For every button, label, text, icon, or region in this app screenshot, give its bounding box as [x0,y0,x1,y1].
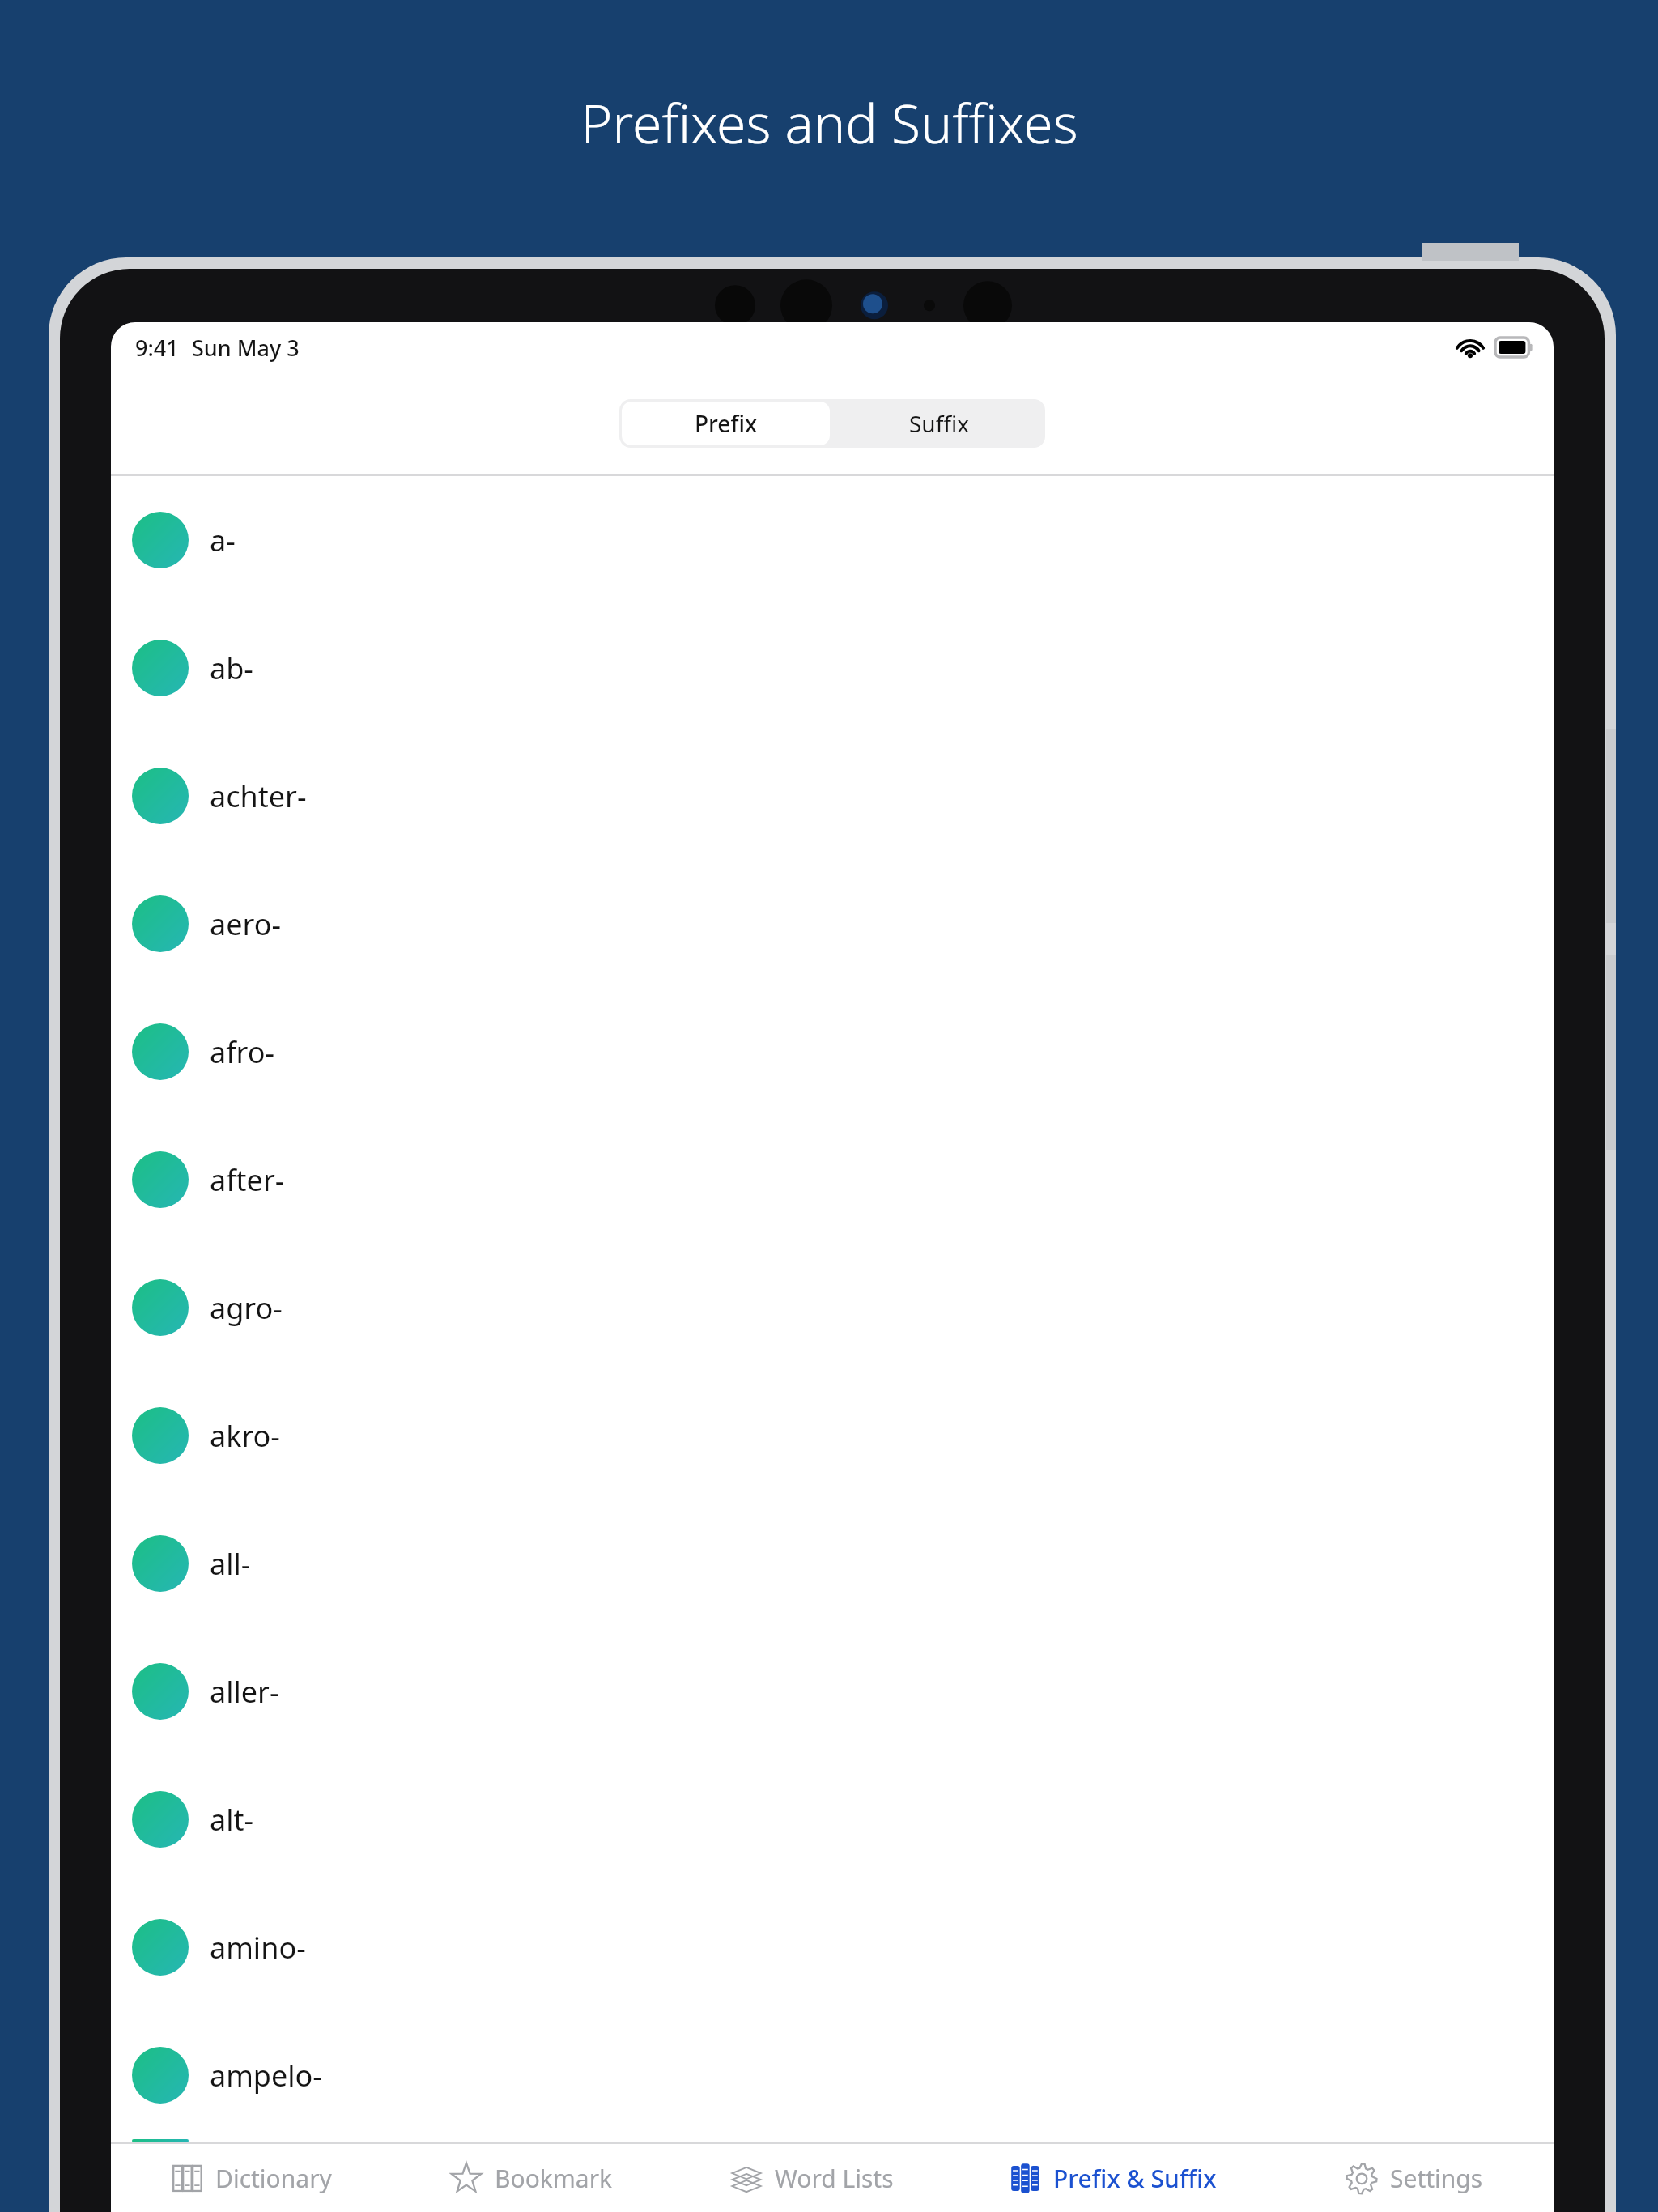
button[interactable]: aller- [111,1627,1554,1755]
staticText: Prefix & Suffix [1053,2162,1217,2195]
staticText: Prefixes and Suffixes [580,86,1078,159]
staticText: aller- [210,1672,279,1712]
staticText: achter- [210,776,307,816]
button[interactable]: amphi- [111,2139,1554,2142]
staticText: Prefix [695,408,758,439]
button[interactable]: agro- [111,1244,1554,1372]
staticText: after- [210,1160,285,1200]
staticText: ab- [210,649,253,688]
button[interactable]: after- [111,1116,1554,1244]
staticText: amino- [210,1928,306,1967]
staticText: all- [210,1544,251,1584]
staticText: ampelo- [210,2056,322,2095]
button[interactable]: ab- [111,604,1554,732]
button[interactable]: aero- [111,860,1554,988]
staticText: a- [210,521,236,560]
staticText: akro- [210,1416,280,1456]
button[interactable]: achter- [111,732,1554,860]
staticText: Dictionary [215,2162,332,2195]
staticText: afro- [210,1032,275,1072]
button[interactable]: alt- [111,1755,1554,1883]
staticText: Word Lists [775,2162,894,2195]
button[interactable]: Bookmark [391,2144,671,2212]
button[interactable]: Suffix [832,399,1045,448]
staticText: Suffix [909,408,969,439]
button[interactable]: a- [111,476,1554,604]
button[interactable]: ampelo- [111,2011,1554,2139]
staticText: Sun May 3 [192,333,300,363]
button[interactable]: Prefix & Suffix [951,2144,1273,2212]
button[interactable]: akro- [111,1372,1554,1499]
staticText: Settings [1390,2162,1483,2195]
button[interactable]: afro- [111,988,1554,1116]
button[interactable]: Settings [1273,2144,1554,2212]
button[interactable]: amino- [111,1883,1554,2011]
staticText: aero- [210,904,282,944]
button[interactable]: Prefix [622,402,830,445]
button[interactable]: all- [111,1499,1554,1627]
staticText: agro- [210,1288,283,1328]
staticText: 9:41 [135,333,179,363]
button[interactable]: Word Lists [671,2144,951,2212]
staticText: alt- [210,1800,254,1840]
button[interactable]: Dictionary [111,2144,391,2212]
staticText: Bookmark [495,2162,613,2195]
